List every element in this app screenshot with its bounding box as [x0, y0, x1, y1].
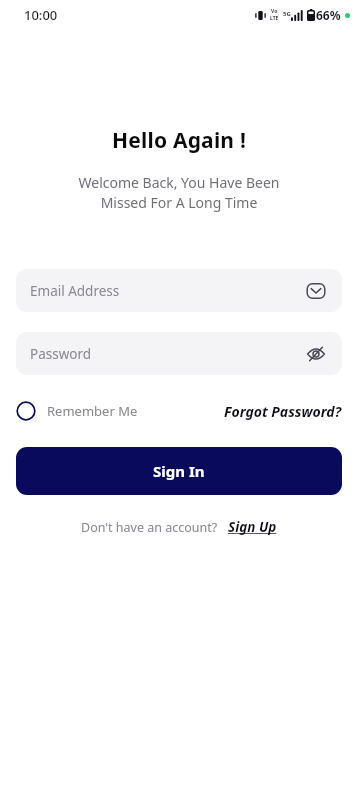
button[interactable]: Email Address — [16, 269, 342, 312]
staticText: Vo — [271, 8, 278, 15]
staticText: LTE — [270, 15, 279, 22]
button[interactable]: Password — [16, 332, 342, 375]
button[interactable]: Remember Me — [16, 401, 144, 421]
staticText: 66% — [316, 7, 341, 23]
staticText: Password — [30, 345, 92, 363]
staticText: Welcome Back, You Have Been Missed For A… — [0, 173, 358, 213]
staticText: 10:00 — [24, 6, 58, 24]
button[interactable]: Sign In — [16, 447, 342, 495]
staticText: Email Address — [30, 282, 120, 300]
staticText: Don't have an account? — [81, 519, 218, 536]
button[interactable]: Forgot Password? — [224, 402, 342, 421]
other: Show password — [304, 342, 328, 366]
staticText: Hello Again ! — [0, 126, 358, 155]
staticText: Sign In — [153, 461, 205, 481]
staticText: 5G — [283, 10, 291, 18]
staticText: Forgot Password? — [224, 402, 342, 421]
staticText: Sign Up — [228, 518, 277, 536]
staticText: Remember Me — [47, 402, 138, 420]
other: Email — [304, 279, 328, 303]
button[interactable]: Sign Up — [228, 518, 277, 536]
